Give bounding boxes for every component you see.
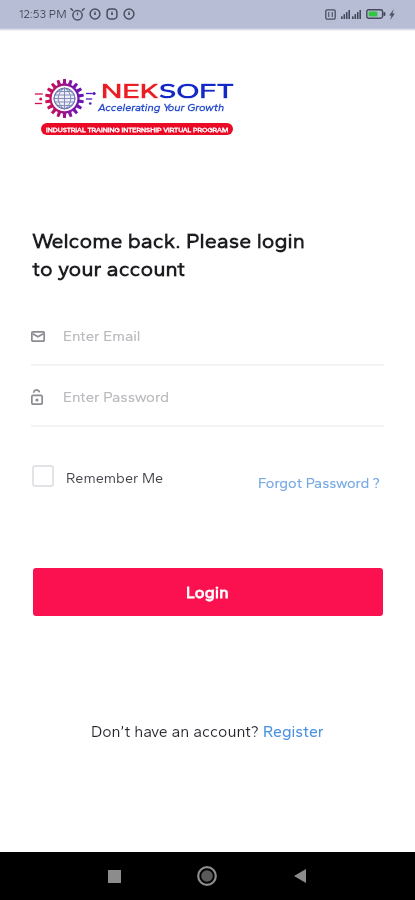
button[interactable]: Home (183, 852, 231, 900)
staticText: Don’t have an account? (91, 722, 263, 741)
staticText: NEK (101, 79, 159, 103)
button[interactable]: Register (263, 722, 324, 741)
staticText: Remember Me (66, 469, 164, 486)
button[interactable]: Forgot Password ? (258, 474, 380, 491)
staticText: Register (263, 722, 324, 741)
staticText: Welcome back. Please login to your accou… (32, 228, 305, 281)
staticText: Enter Email (63, 327, 141, 345)
button[interactable]: Login (33, 568, 383, 616)
button[interactable]: Remember Me (32, 465, 164, 489)
button[interactable]: Recent apps (90, 852, 138, 900)
button[interactable]: Back (276, 852, 324, 900)
staticText: Accelerating Your Growth (98, 101, 225, 114)
staticText: SOFT (159, 79, 236, 103)
staticText: INDUSTRIAL TRAINING INTERNSHIP VIRTUAL P… (46, 125, 229, 133)
staticText: Forgot Password ? (258, 474, 380, 491)
staticText: 12:53 PM (19, 7, 67, 21)
staticText: Login (186, 582, 230, 602)
staticText: Enter Password (63, 388, 170, 406)
